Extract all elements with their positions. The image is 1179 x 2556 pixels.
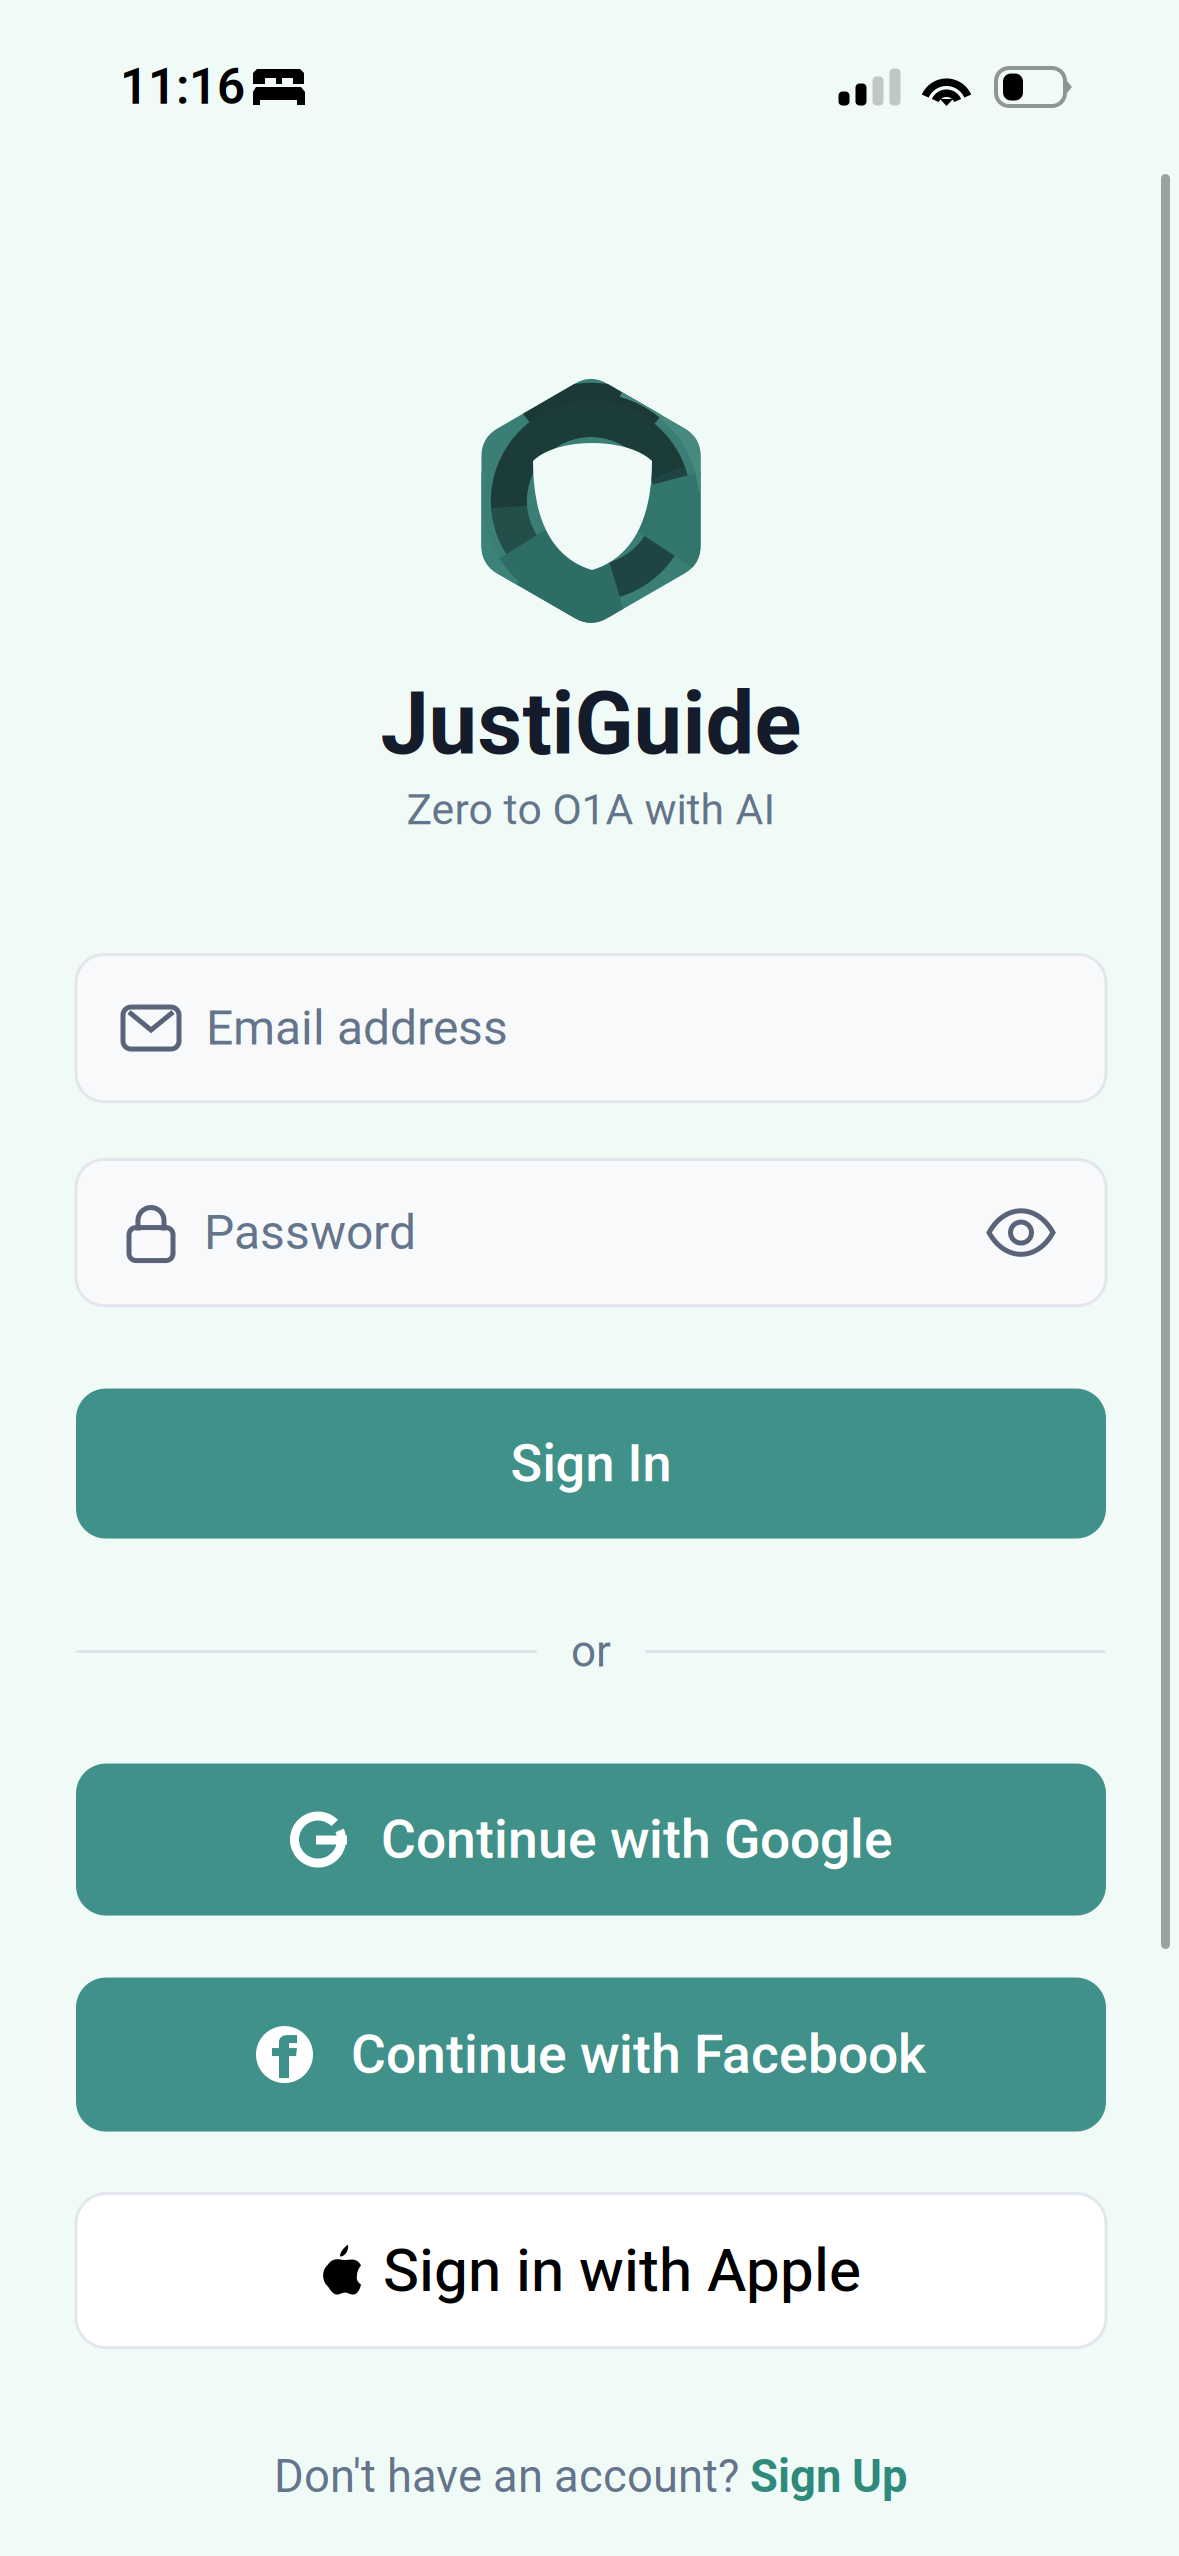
staticText: Sign In (510, 1433, 671, 1494)
button[interactable]: Email address (76, 955, 1106, 1102)
staticText: Zero to O1A with AI (406, 785, 775, 835)
staticText: JustiGuide (380, 673, 801, 775)
staticText: Email address (206, 1000, 508, 1056)
button[interactable]: Continue with Google (76, 1764, 1106, 1916)
button[interactable]: Sign in with Apple (76, 2194, 1106, 2348)
staticText: Sign Up (750, 2450, 908, 2503)
staticText: Continue with Google (381, 1808, 893, 1871)
button[interactable]: Don't have an account? (274, 2450, 908, 2503)
staticText: Password (204, 1204, 416, 1261)
staticText: Continue with Facebook (351, 2023, 926, 2086)
staticText: Sign in with Apple (383, 2235, 861, 2306)
button[interactable]: Sign In (76, 1389, 1106, 1539)
staticText: or (571, 1626, 611, 1677)
staticText: 11:16 (120, 58, 245, 116)
staticText: Don't have an account? (274, 2450, 750, 2503)
button[interactable]: Continue with Facebook (76, 1978, 1106, 2132)
button[interactable]: Password (76, 1160, 1106, 1306)
